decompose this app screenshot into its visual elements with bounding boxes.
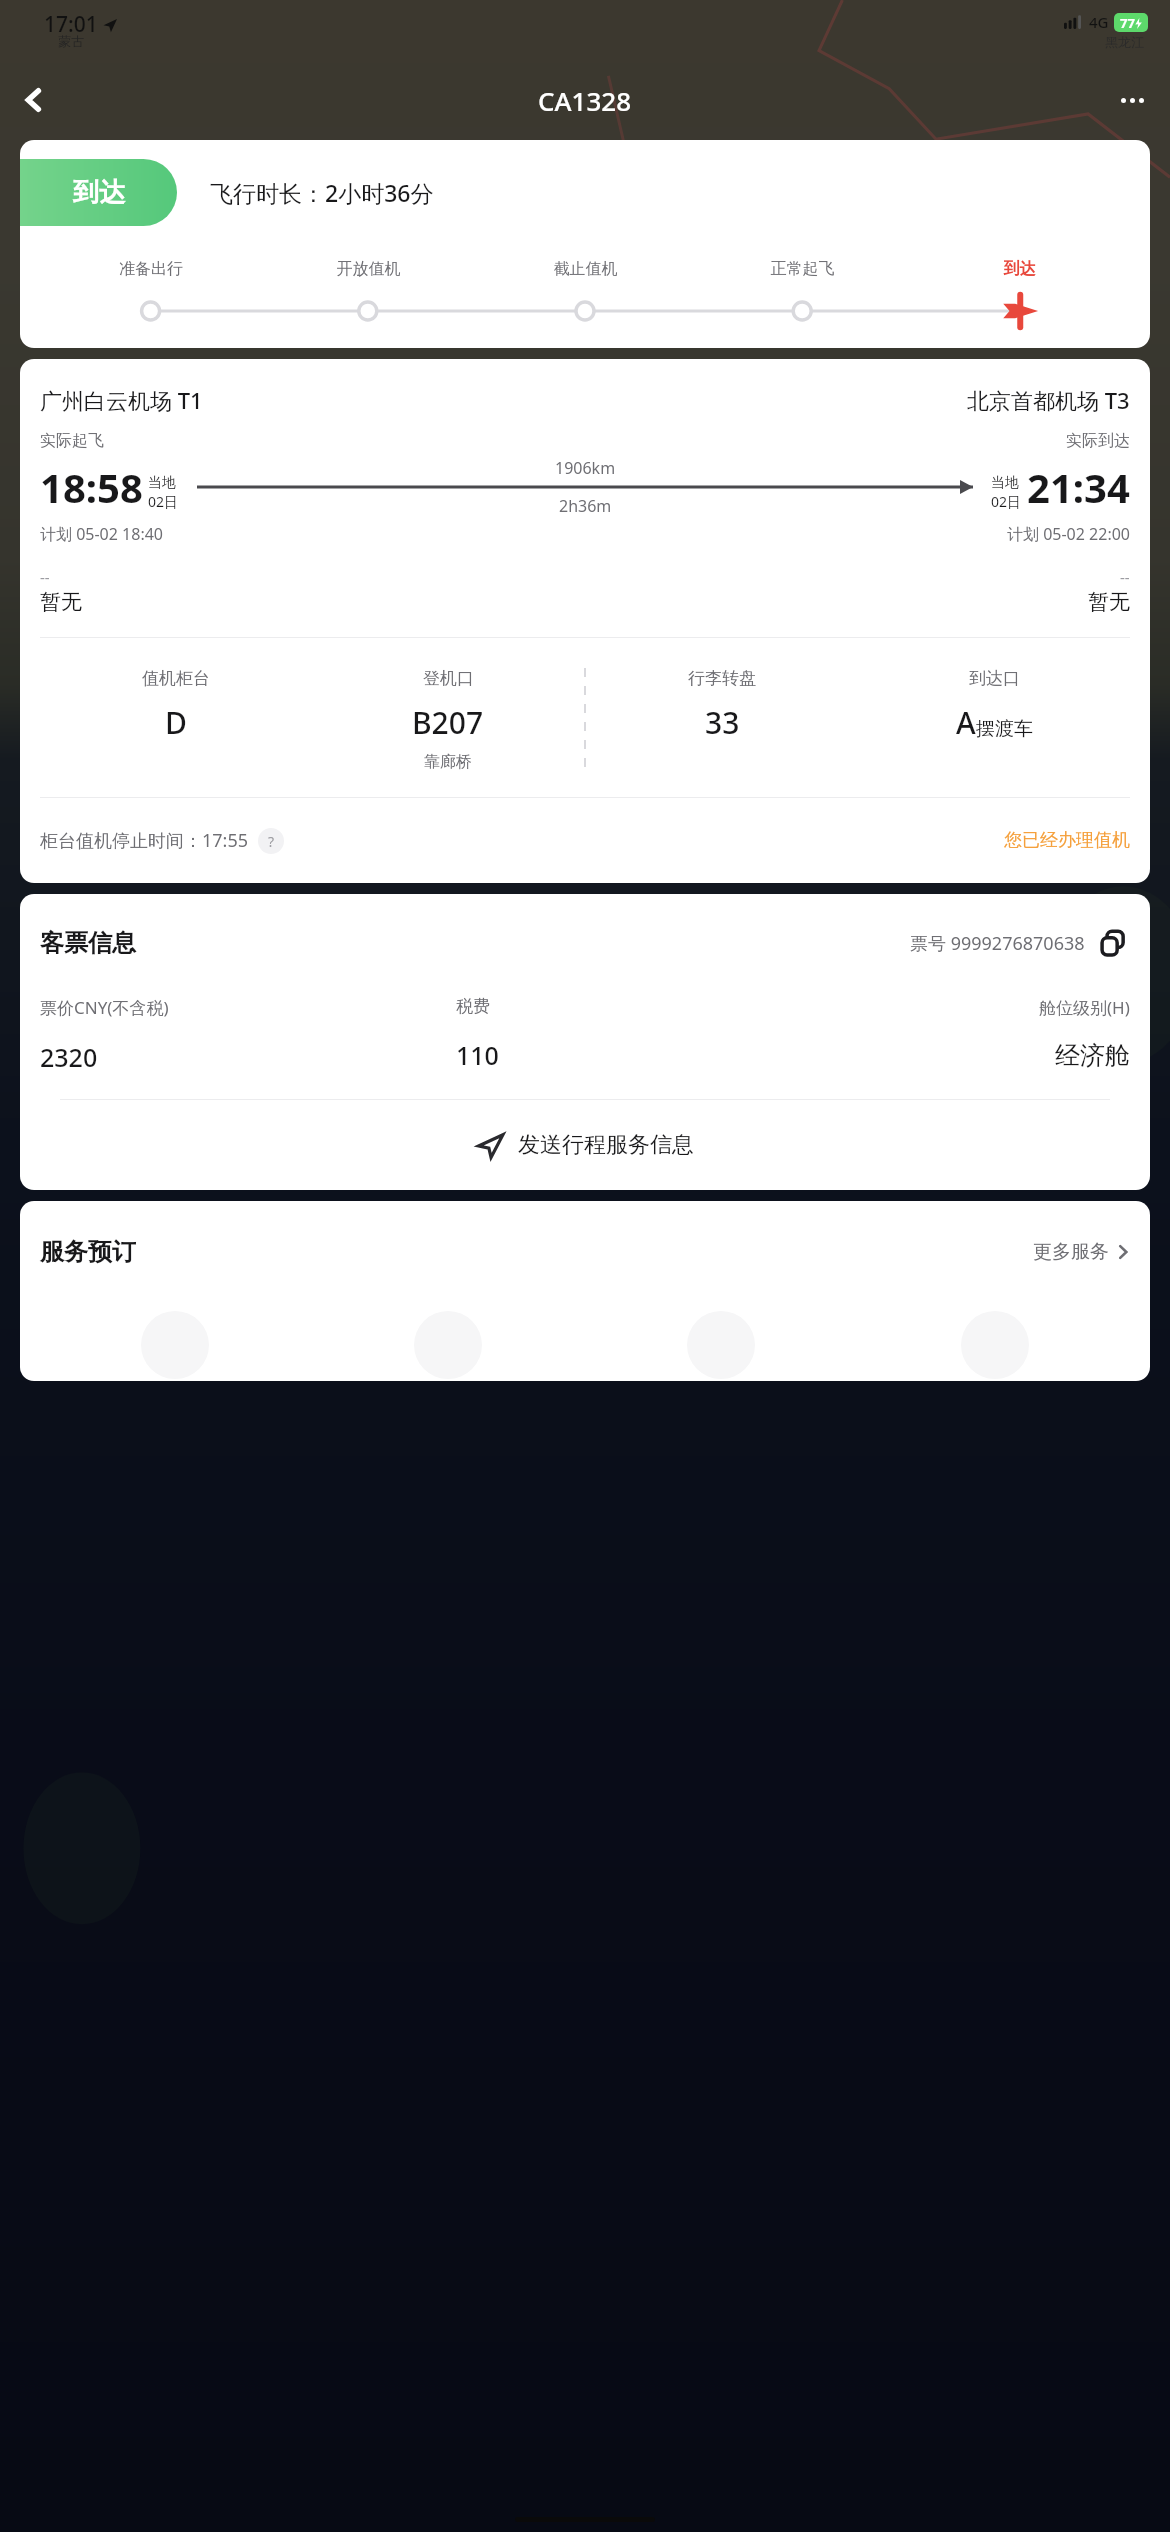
staticText: 票价CNY(不含税): [40, 996, 169, 1019]
button[interactable]: 发送行程服务信息: [20, 1100, 1150, 1190]
staticText: 当地: [991, 474, 1019, 492]
staticText: 到达: [911, 259, 1128, 279]
staticText: CA1328: [538, 83, 632, 118]
staticText: 77: [1120, 14, 1135, 32]
staticText: 蒙古: [58, 33, 84, 49]
button[interactable]: 您已经办理值机: [1004, 829, 1130, 852]
staticText: 行李转盘: [688, 668, 756, 689]
staticText: 02日: [991, 492, 1022, 511]
staticText: 黑龙江: [1105, 34, 1144, 50]
button[interactable]: Service option: [311, 1311, 584, 1381]
staticText: 登机口: [423, 668, 474, 689]
staticText: 经济舱: [1055, 1040, 1130, 1071]
button[interactable]: 到达: [20, 159, 177, 226]
staticText: 发送行程服务信息: [518, 1131, 694, 1159]
staticText: 2320: [40, 1040, 98, 1074]
staticText: 2h36m: [559, 495, 612, 517]
staticText: 计划 05-02 18:40: [40, 523, 163, 545]
button[interactable]: Service option: [858, 1311, 1132, 1381]
staticText: 33: [705, 702, 740, 743]
button[interactable]: Copy ticket number: [1096, 926, 1130, 960]
staticText: 北京首都机场 T3: [967, 385, 1130, 415]
button[interactable]: Service option: [584, 1311, 858, 1381]
staticText: 摆渡车: [976, 717, 1033, 741]
staticText: 截止值机: [477, 259, 694, 279]
staticText: A: [956, 702, 976, 743]
staticText: 柜台值机停止时间：17:55: [40, 828, 249, 853]
staticText: 暂无: [1088, 589, 1130, 615]
staticText: 实际起飞: [40, 431, 104, 451]
staticText: 更多服务: [1033, 1240, 1109, 1264]
staticText: 飞行时长：2小时36分: [210, 177, 434, 208]
staticText: --: [40, 567, 50, 587]
staticText: 开放值机: [260, 259, 477, 279]
staticText: 靠廊桥: [424, 752, 472, 772]
staticText: 4G: [1089, 12, 1109, 32]
staticText: 客票信息: [40, 928, 136, 958]
staticText: 暂无: [40, 589, 82, 615]
staticText: 18:58: [40, 460, 143, 514]
staticText: 计划 05-02 22:00: [1007, 523, 1130, 545]
staticText: 1906km: [555, 457, 616, 479]
button[interactable]: Service option: [38, 1311, 311, 1381]
button[interactable]: Back: [10, 76, 58, 124]
staticText: 服务预订: [40, 1237, 136, 1267]
staticText: 到达: [73, 176, 125, 209]
staticText: 17:01: [44, 10, 98, 39]
staticText: 21:34: [1027, 460, 1130, 514]
staticText: ?: [268, 832, 275, 851]
staticText: B207: [412, 702, 484, 743]
staticText: 值机柜台: [142, 668, 210, 689]
staticText: 02日: [148, 492, 179, 511]
staticText: 到达口: [969, 668, 1020, 689]
staticText: 广州白云机场 T1: [40, 385, 203, 415]
staticText: 正常起飞: [694, 259, 911, 279]
button[interactable]: Help: [258, 828, 284, 854]
staticText: --: [1120, 567, 1130, 587]
button[interactable]: More options: [1108, 76, 1156, 124]
staticText: 舱位级别(H): [1039, 996, 1130, 1019]
staticText: 110: [456, 1038, 499, 1072]
staticText: D: [165, 702, 187, 743]
staticText: 实际到达: [1066, 431, 1130, 451]
button[interactable]: 更多服务: [1033, 1240, 1130, 1264]
staticText: 当地: [148, 474, 176, 492]
staticText: 税费: [456, 996, 490, 1017]
staticText: 票号 9999276870638: [910, 931, 1085, 956]
staticText: 准备出行: [42, 259, 260, 279]
